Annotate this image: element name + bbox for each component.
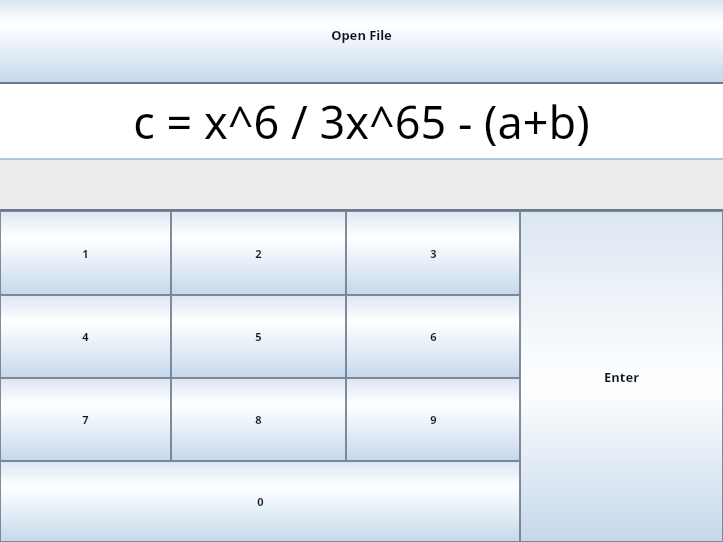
button[interactable]: 9 (346, 378, 520, 461)
staticText: 2 (255, 246, 262, 261)
staticText: 1 (82, 246, 89, 261)
staticText: 8 (255, 412, 262, 427)
button[interactable]: 2 (171, 211, 346, 295)
button[interactable]: 8 (171, 378, 346, 461)
staticText: Enter (604, 368, 639, 386)
button[interactable]: 0 (0, 461, 520, 542)
button[interactable]: 7 (0, 378, 171, 461)
button[interactable]: 5 (171, 295, 346, 378)
button[interactable]: c = x^6 / 3x^65 - (a+b) (0, 84, 723, 158)
button[interactable]: 4 (0, 295, 171, 378)
staticText: 0 (257, 494, 264, 509)
button[interactable]: Open File (0, 0, 723, 82)
staticText: 7 (82, 412, 89, 427)
staticText: 6 (430, 329, 437, 344)
button[interactable]: Enter (520, 211, 723, 542)
staticText: 4 (82, 329, 89, 344)
staticText: Open File (331, 26, 392, 44)
staticText: 9 (430, 412, 437, 427)
button[interactable]: 6 (346, 295, 520, 378)
button[interactable]: 1 (0, 211, 171, 295)
button[interactable]: 3 (346, 211, 520, 295)
staticText: c = x^6 / 3x^65 - (a+b) (0, 91, 723, 152)
staticText: 3 (430, 246, 437, 261)
staticText: 5 (255, 329, 262, 344)
